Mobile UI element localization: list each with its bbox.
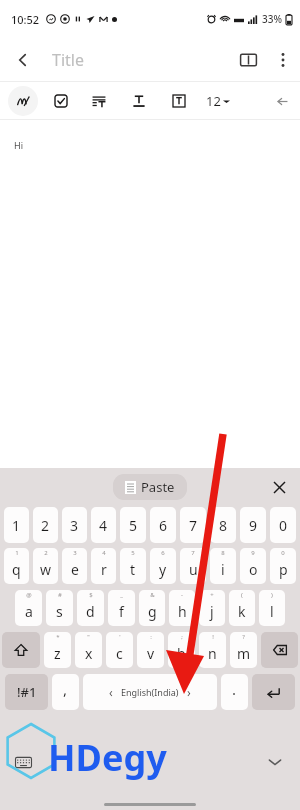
staticText: Title [52,49,84,71]
button[interactable]: Checklist [48,88,74,114]
button[interactable]: 6 [150,548,176,584]
button[interactable]: ! [199,632,226,668]
staticText: ; [181,633,183,641]
button[interactable]: , [52,674,79,710]
button[interactable]: Text box [166,88,192,114]
button[interactable]: ; [168,632,195,668]
button[interactable]: Text format [126,88,152,114]
staticText: o [249,560,258,579]
button[interactable]: Keyboard settings [8,747,38,777]
button[interactable]: 4 [91,548,116,584]
button[interactable]: + [199,590,225,626]
button[interactable]: ) [259,590,285,626]
button[interactable]: ( [229,590,255,626]
staticText: 5 [129,516,138,535]
button[interactable]: Backspace [261,632,298,668]
staticText: q [12,560,21,579]
button[interactable]: 0 [270,507,296,543]
staticText: w [40,560,52,579]
staticText: 5 [131,549,135,557]
button[interactable]: 1 [4,507,29,543]
button[interactable]: 2 [33,507,58,543]
button[interactable]: Close suggestions [266,474,292,500]
button[interactable]: & [139,590,165,626]
button[interactable]: 0 [270,548,296,584]
button[interactable]: _ [108,590,135,626]
staticText: f [119,602,124,621]
staticText: 12 [206,92,221,110]
staticText: 9 [249,516,258,535]
button[interactable]: : [137,632,164,668]
staticText: 0 [281,549,285,557]
staticText: d [86,602,95,621]
staticText: 4 [99,516,108,535]
staticText: English(India) [121,686,179,698]
button[interactable]: Paste [113,474,187,500]
staticText: Hi [14,139,23,151]
button[interactable]: Hide keyboard [260,747,290,777]
staticText: & [150,591,155,599]
button[interactable]: 7 [180,548,206,584]
staticText: ! [212,633,214,641]
staticText: m [237,644,251,663]
staticText: 9 [251,549,255,557]
button[interactable]: 9 [240,548,266,584]
button[interactable]: 6 [150,507,176,543]
staticText: 7 [191,549,195,557]
button[interactable]: Collapse toolbar [268,87,296,115]
button[interactable]: Back [6,43,40,77]
staticText: 1 [12,516,21,535]
staticText: v [147,644,155,663]
staticText: HDegy [48,733,167,782]
button[interactable]: More options [266,43,300,77]
staticText: 8 [221,549,225,557]
staticText: 2 [41,516,50,535]
button[interactable]: ' [106,632,133,668]
staticText: z [54,644,61,663]
button[interactable]: Shift [2,632,40,668]
button[interactable]: * [44,632,71,668]
staticText: 2 [44,549,48,557]
button[interactable]: @ [15,590,42,626]
button[interactable]: $ [77,590,104,626]
button[interactable]: Enter [252,674,295,710]
button[interactable]: Pen [8,86,38,116]
button[interactable]: 3 [62,507,87,543]
button[interactable]: 8 [210,507,236,543]
staticText: 10:52 [11,12,40,27]
staticText: @ [26,591,32,599]
button[interactable]: 5 [120,507,146,543]
button[interactable]: 1 [4,548,29,584]
button[interactable]: 7 [180,507,206,543]
staticText: * [56,633,60,641]
staticText: s [56,602,63,621]
staticText: . [232,679,237,699]
button[interactable]: - [169,590,195,626]
button[interactable]: 5 [120,548,146,584]
staticText: : [150,633,152,641]
button[interactable]: 12 [202,88,234,114]
button[interactable]: . [221,674,248,710]
staticText: + [210,591,214,599]
button[interactable]: " [75,632,102,668]
staticText: x [85,644,93,663]
button[interactable]: ? [230,632,257,668]
staticText: l [270,602,274,621]
button[interactable]: ‹ [83,674,217,710]
button[interactable]: Paragraph style [86,88,112,114]
button[interactable]: 3 [62,548,87,584]
button[interactable]: 9 [240,507,266,543]
staticText: 3 [70,516,79,535]
staticText: g [148,602,157,621]
button[interactable]: 8 [210,548,236,584]
button[interactable]: 4 [91,507,116,543]
button[interactable]: !#1 [5,674,48,710]
button[interactable]: 2 [33,548,58,584]
button[interactable]: Reading view [230,42,266,78]
staticText: y [159,560,167,579]
staticText: 1 [15,549,19,557]
staticText: , [63,679,68,699]
staticText: i [221,560,225,579]
staticText: e [71,560,79,579]
button[interactable]: # [46,590,73,626]
